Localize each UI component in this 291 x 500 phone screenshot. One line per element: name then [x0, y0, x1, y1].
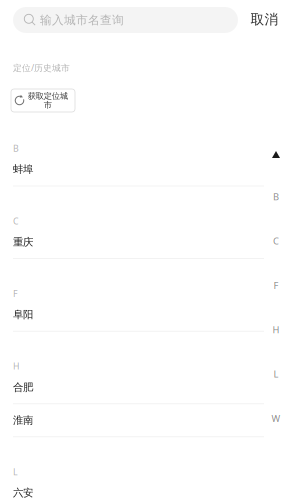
button[interactable]: 取消 [246, 6, 282, 32]
staticText: 获取定位城市 [27, 91, 67, 110]
staticText: H [272, 323, 279, 336]
staticText: H [13, 360, 20, 372]
staticText: B [273, 190, 279, 203]
button[interactable]: 蚌埠 [13, 153, 264, 186]
staticText: 六安 [13, 486, 33, 499]
button[interactable]: F [268, 278, 284, 292]
staticText: C [13, 215, 19, 227]
staticText: L [13, 466, 18, 478]
button[interactable]: H [268, 323, 284, 337]
staticText: 蚌埠 [13, 163, 33, 176]
button[interactable]: 六安 [13, 476, 264, 500]
staticText: F [13, 288, 18, 300]
staticText: 取消 [250, 11, 278, 28]
button[interactable]: W [268, 411, 284, 425]
staticText: 淮南 [13, 414, 33, 427]
staticText: B [13, 142, 19, 154]
staticText: C [273, 235, 279, 247]
button[interactable]: 搜索城市 [13, 7, 238, 33]
button[interactable]: C [268, 234, 284, 248]
button[interactable]: L [268, 367, 284, 381]
staticText: 定位/历史城市 [13, 62, 70, 74]
button[interactable]: B [268, 190, 284, 204]
staticText: 重庆 [13, 235, 33, 248]
button[interactable]: 回到顶部 [268, 147, 284, 161]
button[interactable]: 合肥 [13, 371, 264, 404]
staticText: W [271, 412, 280, 425]
button[interactable]: 淮南 [13, 404, 264, 437]
staticText: F [273, 279, 278, 292]
staticText: 合肥 [13, 381, 33, 394]
staticText: 阜阳 [13, 308, 33, 321]
staticText: L [273, 368, 278, 380]
button[interactable]: 阜阳 [13, 298, 264, 331]
staticText: 输入城市名查询 [40, 13, 124, 27]
button[interactable]: 重庆 [13, 225, 264, 258]
button[interactable]: 获取定位城市 [11, 89, 75, 112]
